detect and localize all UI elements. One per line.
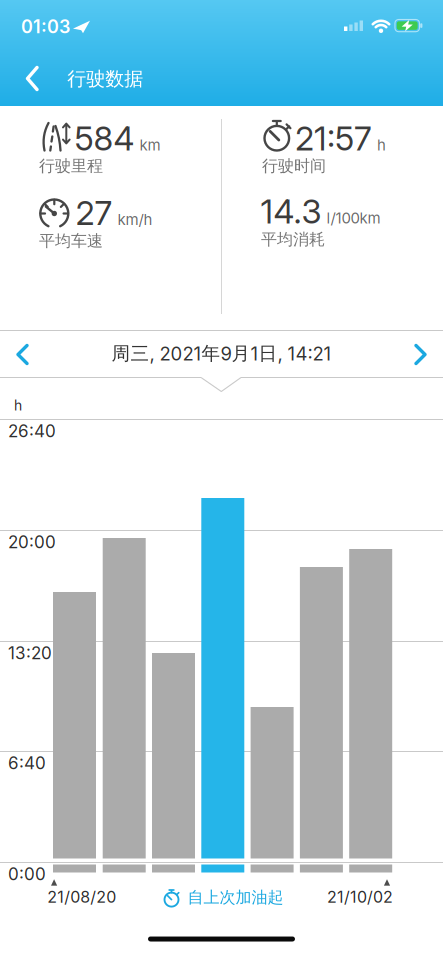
staticText: 584 bbox=[74, 118, 134, 158]
staticText: 13:20 bbox=[8, 643, 52, 663]
button[interactable]: 自上次加油起 bbox=[162, 887, 283, 908]
staticText: 0:00 bbox=[8, 864, 46, 884]
staticText: 行驶数据 bbox=[67, 67, 143, 91]
button[interactable]: Day 7 bbox=[349, 549, 392, 872]
staticText: 21/10/02 bbox=[327, 887, 393, 907]
staticText: 自上次加油起 bbox=[187, 887, 283, 908]
staticText: h bbox=[14, 397, 22, 414]
staticText: 26:40 bbox=[8, 421, 56, 441]
button[interactable]: Day 4 bbox=[201, 498, 244, 872]
button[interactable]: Day 5 bbox=[251, 707, 294, 872]
staticText: l/100km bbox=[326, 209, 380, 227]
button[interactable]: Day 3 bbox=[152, 653, 195, 872]
staticText: 6:40 bbox=[8, 753, 46, 773]
staticText: h bbox=[377, 136, 386, 154]
staticText: 平均消耗 bbox=[261, 229, 325, 250]
staticText: 周三, 2021年9月1日, 14:21 bbox=[111, 342, 331, 365]
button[interactable]: Back bbox=[10, 56, 54, 100]
staticText: 27 bbox=[75, 193, 112, 233]
staticText: km bbox=[139, 136, 160, 154]
button[interactable]: Day 2 bbox=[103, 538, 146, 872]
button[interactable]: Next day bbox=[398, 330, 443, 378]
staticText: 21:57 bbox=[295, 118, 372, 158]
staticText: 行驶时间 bbox=[262, 156, 326, 176]
button[interactable]: Day 1 bbox=[53, 592, 96, 872]
staticText: km/h bbox=[117, 210, 152, 229]
button[interactable]: Day 6 bbox=[300, 567, 343, 872]
staticText: 行驶里程 bbox=[39, 156, 103, 176]
button[interactable]: Previous day bbox=[0, 330, 45, 378]
staticText: 21/08/20 bbox=[47, 887, 116, 907]
staticText: 01:03 bbox=[21, 16, 70, 38]
staticText: 14.3 bbox=[260, 191, 321, 231]
staticText: 平均车速 bbox=[39, 231, 103, 251]
staticText: 20:00 bbox=[8, 532, 56, 552]
